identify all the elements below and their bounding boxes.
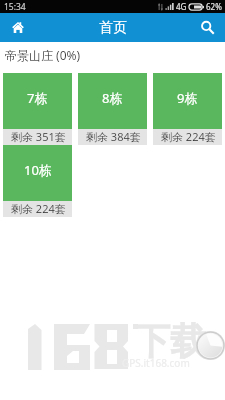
button[interactable]: Search (189, 13, 225, 42)
staticText: 9栋 (177, 89, 198, 107)
staticText: 帝景山庄 (0%) (5, 47, 81, 63)
button[interactable]: 8栋 (78, 73, 147, 145)
staticText: 下载 (133, 318, 207, 365)
staticText: 剩余 351套 (11, 129, 66, 144)
staticText: 剩余 224套 (11, 201, 66, 216)
button[interactable]: 9栋 (153, 73, 222, 145)
staticText: 62% (206, 1, 222, 12)
staticText: 15:34 (4, 1, 26, 13)
button[interactable]: Home (0, 13, 36, 42)
staticText: 10栋 (24, 161, 52, 179)
button[interactable]: 10栋 (3, 145, 72, 217)
staticText: GPS.it168.com (122, 356, 190, 370)
staticText: 8栋 (102, 89, 123, 107)
button[interactable]: 7栋 (3, 73, 72, 145)
button[interactable]: Floating assistive button (196, 331, 225, 360)
staticText: 剩余 384套 (86, 129, 141, 144)
staticText: 首页 (99, 19, 127, 37)
staticText: 4G (176, 1, 187, 12)
staticText: 7栋 (27, 89, 48, 107)
staticText: 剩余 224套 (161, 129, 216, 144)
